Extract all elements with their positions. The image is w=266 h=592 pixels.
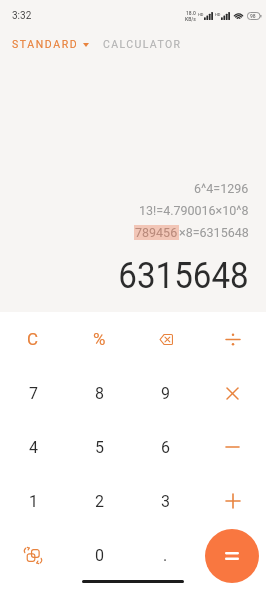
other: Multiply — [227, 388, 238, 399]
staticText: 7 — [29, 384, 38, 403]
button[interactable]: 8 — [66, 366, 132, 420]
other: Divide — [226, 333, 240, 346]
button[interactable]: STANDARD — [12, 38, 89, 56]
staticText: 3 — [161, 492, 170, 511]
staticText: 0 — [95, 546, 104, 565]
staticText: 789456 — [135, 225, 178, 240]
other: Plus — [226, 494, 240, 508]
staticText: 6315648 — [118, 255, 249, 297]
staticText: ×8=6315648 — [179, 225, 249, 240]
staticText: 5 — [95, 438, 104, 457]
button[interactable]: Divide — [199, 312, 266, 366]
button[interactable]: Plus — [199, 474, 266, 528]
staticText: 1 — [29, 492, 38, 511]
button[interactable]: 9 — [132, 366, 199, 420]
button[interactable]: 1 — [0, 474, 66, 528]
other: Minus — [226, 444, 239, 450]
button[interactable]: 3 — [132, 474, 199, 528]
button[interactable]: 6 — [132, 420, 199, 474]
staticText: 3:32 — [12, 10, 32, 22]
staticText: 98 — [250, 13, 256, 19]
staticText: STANDARD — [12, 38, 79, 50]
staticText: 9 — [161, 384, 170, 403]
staticText: 4 — [29, 438, 38, 457]
button[interactable]: C — [0, 312, 66, 366]
staticText: 18.0 — [186, 10, 196, 16]
staticText: 8 — [95, 384, 104, 403]
button[interactable]: CALCULATOR — [103, 38, 182, 56]
button[interactable]: Minus — [199, 420, 266, 474]
button[interactable]: Unit converter — [0, 528, 66, 582]
button[interactable]: . — [132, 528, 199, 582]
staticText: HD — [198, 12, 204, 17]
button[interactable]: 2 — [66, 474, 132, 528]
staticText: HD — [215, 12, 221, 17]
button[interactable]: 5 — [66, 420, 132, 474]
button[interactable]: Equals — [205, 529, 259, 583]
button[interactable]: 4 — [0, 420, 66, 474]
button[interactable]: Backspace — [132, 312, 199, 366]
staticText: . — [163, 546, 168, 565]
staticText: KB/s — [185, 16, 196, 22]
button[interactable] — [199, 528, 266, 582]
staticText: % — [93, 329, 106, 349]
staticText: C — [27, 329, 39, 349]
button[interactable]: 7 — [0, 366, 66, 420]
button[interactable]: 0 — [66, 528, 132, 582]
other: Unit converter — [24, 547, 42, 564]
staticText: 6 — [161, 438, 170, 457]
button[interactable]: % — [66, 312, 132, 366]
staticText: 2 — [95, 492, 104, 511]
staticText: 6^4=1296 — [194, 181, 249, 196]
staticText: 13!=4.790016×10^8 — [139, 203, 249, 218]
button[interactable]: Multiply — [199, 366, 266, 420]
other: Backspace — [159, 334, 173, 345]
